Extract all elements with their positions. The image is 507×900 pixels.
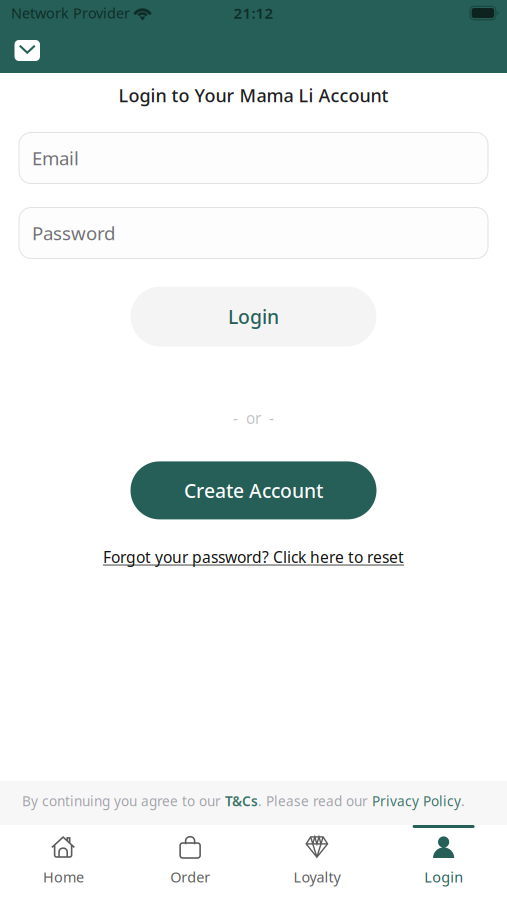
button[interactable]: Email	[19, 132, 488, 183]
staticText: T&Cs	[225, 792, 258, 810]
staticText: Email	[32, 145, 79, 171]
staticText: Login	[424, 867, 463, 887]
staticText: 21:12	[233, 3, 273, 23]
staticText: Order	[170, 867, 210, 887]
staticText: Password	[32, 220, 115, 246]
staticText: Loyalty	[293, 867, 340, 887]
staticText: - or -	[233, 407, 274, 428]
button[interactable]: Password	[19, 207, 488, 258]
staticText: .	[461, 792, 465, 810]
staticText: Create Account	[184, 477, 323, 503]
button[interactable]: Forgot your password? Click here to rese…	[103, 541, 404, 573]
button[interactable]: Create Account	[130, 461, 376, 519]
button[interactable]: Login	[130, 286, 376, 346]
button[interactable]: Loyalty	[253, 825, 380, 900]
button[interactable]: Mail	[0, 31, 52, 68]
button[interactable]: T&Cs	[225, 792, 258, 810]
staticText: . Please read our	[258, 792, 372, 810]
button[interactable]: Home	[0, 825, 127, 900]
staticText: Forgot your password? Click here to rese…	[103, 546, 404, 568]
staticText: Network Provider	[11, 3, 130, 23]
staticText: Login to Your Mama Li Account	[118, 83, 388, 107]
button[interactable]: Login	[380, 825, 507, 900]
staticText: Home	[43, 867, 84, 887]
staticText: By continuing you agree to our	[22, 792, 225, 810]
staticText: Privacy Policy	[372, 792, 461, 810]
staticText: Login	[228, 303, 279, 330]
button[interactable]: Order	[127, 825, 254, 900]
button[interactable]: Privacy Policy	[372, 792, 461, 810]
